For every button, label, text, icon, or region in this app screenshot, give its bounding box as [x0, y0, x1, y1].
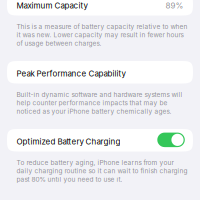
staticText: This is a measure of battery capacity re… — [16, 23, 187, 31]
staticText: past 80% until you need to use it. — [16, 175, 122, 183]
staticText: Optimized Battery Charging — [16, 137, 120, 146]
staticText: it was new. Lower capacity may result in… — [16, 31, 183, 39]
staticText: Maximum Capacity — [16, 1, 87, 10]
staticText: To reduce battery aging, iPhone learns f… — [16, 159, 173, 167]
staticText: of usage between charges. — [16, 39, 101, 47]
staticText: 89% — [166, 1, 184, 10]
button[interactable]: Peak Performance Capability — [7, 61, 193, 83]
button[interactable]: Optimized Battery Charging — [7, 129, 193, 151]
staticText: help counter performance impacts that ma… — [16, 99, 167, 107]
staticText: noticed as your iPhone battery chemicall… — [16, 107, 171, 115]
button[interactable]: Maximum Capacity, 89% — [7, 0, 193, 15]
staticText: Built-in dynamic software and hardware s… — [16, 91, 182, 99]
staticText: Peak Performance Capability — [16, 69, 125, 78]
staticText: daily charging routine so it can wait to… — [16, 167, 187, 175]
